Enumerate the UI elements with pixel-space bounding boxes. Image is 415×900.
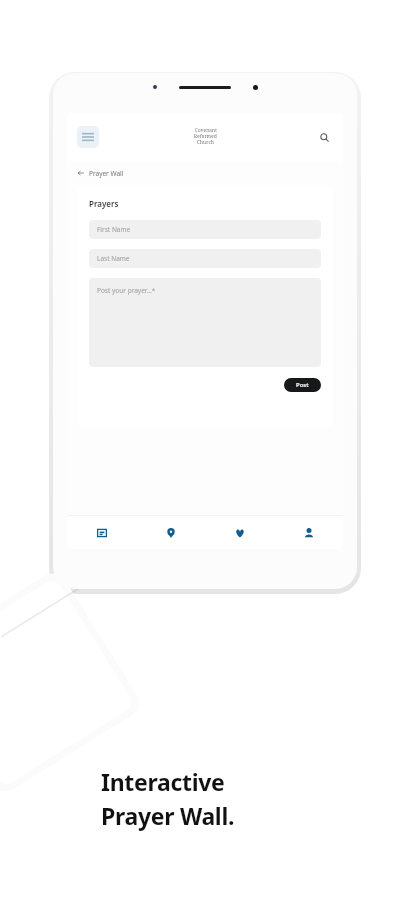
staticText: Post your prayer...* xyxy=(97,286,156,295)
staticText: Interactive xyxy=(101,766,225,797)
staticText: Post xyxy=(296,381,309,389)
button[interactable]: Last Name xyxy=(89,249,321,268)
staticText: Prayer Wall xyxy=(89,169,124,178)
button[interactable]: First Name xyxy=(89,220,321,239)
button[interactable]: Prayer Wall xyxy=(78,161,343,185)
button[interactable]: Menu xyxy=(77,126,99,148)
staticText: Church xyxy=(197,139,214,145)
button[interactable]: Post your prayer...* xyxy=(89,278,321,367)
staticText: Prayer Wall. xyxy=(101,800,235,831)
button[interactable]: Feed xyxy=(67,516,136,549)
button[interactable]: Search xyxy=(315,128,333,146)
staticText: Reformed xyxy=(194,133,217,139)
button[interactable]: Post xyxy=(284,378,321,392)
button[interactable]: Profile xyxy=(274,516,343,549)
staticText: First Name xyxy=(97,225,131,234)
staticText: Covenant xyxy=(195,127,217,133)
staticText: Prayers xyxy=(89,198,119,209)
button[interactable]: Locations xyxy=(136,516,205,549)
button[interactable]: Prayer Wall xyxy=(205,516,274,549)
staticText: Last Name xyxy=(97,254,130,263)
